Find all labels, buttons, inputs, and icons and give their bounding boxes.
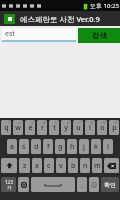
staticText: b bbox=[71, 161, 76, 171]
staticText: i bbox=[89, 123, 91, 133]
staticText: u bbox=[76, 123, 81, 133]
staticText: c bbox=[47, 161, 51, 171]
staticText: y bbox=[64, 123, 68, 133]
staticText: w bbox=[15, 123, 21, 133]
staticText: . bbox=[81, 179, 84, 190]
button[interactable]: 8 bbox=[85, 120, 95, 135]
staticText: f bbox=[47, 142, 50, 152]
staticText: 4 bbox=[43, 120, 46, 125]
button[interactable]: 4 bbox=[37, 120, 47, 135]
staticText: 검색 bbox=[92, 31, 107, 40]
staticText: 123 bbox=[5, 179, 13, 185]
staticText: h bbox=[70, 142, 75, 152]
button[interactable]: 7 bbox=[73, 120, 83, 135]
button[interactable]: 검색 bbox=[78, 28, 120, 43]
staticText: ☺ bbox=[91, 181, 98, 188]
staticText: o bbox=[100, 123, 105, 133]
staticText: 6 bbox=[67, 120, 70, 125]
button[interactable]: k bbox=[91, 139, 101, 154]
button[interactable]: f bbox=[43, 139, 53, 154]
button[interactable]: n bbox=[80, 158, 90, 173]
staticText: 0 bbox=[115, 120, 118, 125]
button[interactable]: s bbox=[19, 139, 29, 154]
staticText: 8 bbox=[91, 120, 94, 125]
button[interactable]: 5 bbox=[49, 120, 59, 135]
button[interactable]: b bbox=[68, 158, 78, 173]
button[interactable]: 9 bbox=[97, 120, 107, 135]
button[interactable]: x bbox=[32, 158, 42, 173]
button[interactable]: a bbox=[7, 139, 17, 154]
staticText: p bbox=[112, 123, 117, 133]
button[interactable]: 확인 bbox=[101, 177, 119, 192]
button[interactable]: Settings bbox=[18, 177, 29, 192]
button[interactable]: Emoji bbox=[89, 177, 99, 192]
staticText: 9 bbox=[103, 120, 106, 125]
staticText: q bbox=[4, 123, 9, 133]
button[interactable]: 2 bbox=[13, 120, 23, 135]
button[interactable]: h bbox=[67, 139, 77, 154]
button[interactable]: Backspace bbox=[104, 158, 119, 173]
staticText: g bbox=[58, 142, 63, 152]
button[interactable]: 123가 bbox=[1, 177, 16, 192]
staticText: l bbox=[107, 142, 109, 152]
staticText: v bbox=[59, 161, 63, 171]
staticText: d bbox=[34, 142, 39, 152]
staticText: est bbox=[5, 29, 15, 39]
staticText: 확인 bbox=[104, 181, 116, 189]
staticText: 2 bbox=[19, 120, 22, 125]
staticText: j bbox=[83, 142, 85, 152]
staticText: k bbox=[94, 142, 98, 152]
staticText: m bbox=[94, 161, 101, 171]
button[interactable]: Shift bbox=[1, 158, 17, 173]
button[interactable]: 3 bbox=[25, 120, 35, 135]
staticText: r bbox=[41, 123, 44, 133]
button[interactable]: m bbox=[92, 158, 102, 173]
staticText: z bbox=[23, 161, 27, 171]
staticText: e bbox=[28, 123, 33, 133]
staticText: 7 bbox=[79, 120, 82, 125]
button[interactable]: est bbox=[2, 28, 76, 42]
staticText: t bbox=[53, 123, 56, 133]
button[interactable]: z bbox=[19, 158, 30, 173]
button[interactable]: d bbox=[31, 139, 41, 154]
button[interactable]: l bbox=[103, 139, 113, 154]
button[interactable]: 6 bbox=[61, 120, 71, 135]
button[interactable]: Space bbox=[31, 177, 75, 192]
staticText: 오후 10:25 bbox=[90, 2, 119, 10]
staticText: a bbox=[10, 142, 15, 152]
staticText: 3 bbox=[31, 120, 34, 125]
button[interactable]: g bbox=[55, 139, 65, 154]
button[interactable]: c bbox=[44, 158, 54, 173]
staticText: x bbox=[35, 161, 39, 171]
staticText: 에스페란토 사전 Ver.0.9 bbox=[20, 14, 100, 24]
staticText: 가 bbox=[7, 185, 12, 191]
button[interactable]: 1 bbox=[1, 120, 11, 135]
button[interactable]: 0 bbox=[109, 120, 119, 135]
button[interactable]: Period bbox=[77, 177, 87, 192]
staticText: 5 bbox=[55, 120, 58, 125]
button[interactable]: v bbox=[56, 158, 66, 173]
staticText: 1 bbox=[7, 120, 10, 125]
staticText: s bbox=[22, 142, 26, 152]
staticText: n bbox=[83, 161, 88, 171]
button[interactable]: j bbox=[79, 139, 89, 154]
